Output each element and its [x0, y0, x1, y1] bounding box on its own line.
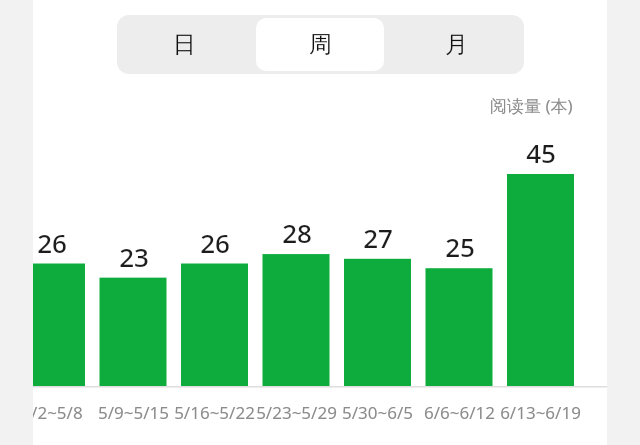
staticText: 阅读量 (本) — [490, 94, 573, 117]
staticText: 25 — [445, 229, 475, 263]
staticText: 26 — [200, 225, 230, 259]
button[interactable]: 月 — [388, 15, 524, 74]
staticText: 周 — [309, 30, 332, 59]
staticText: 6/13~6/19 — [500, 401, 581, 424]
staticText: 45 — [526, 135, 556, 169]
button[interactable]: 周 — [252, 15, 388, 74]
other: Weekly reading chart — [33, 0, 607, 445]
staticText: 28 — [282, 215, 312, 249]
staticText: 日 — [173, 30, 196, 59]
staticText: 月 — [445, 30, 468, 59]
staticText: 27 — [363, 220, 393, 254]
staticText: 5/9~5/15 — [98, 401, 169, 424]
staticText: 5/30~6/5 — [342, 401, 413, 424]
staticText: 6/6~6/12 — [424, 401, 495, 424]
staticText: 5/2~5/8 — [33, 401, 83, 424]
staticText: 26 — [37, 225, 67, 259]
staticText: 23 — [119, 239, 149, 273]
staticText: 5/23~5/29 — [256, 401, 337, 424]
staticText: 5/16~5/22 — [174, 401, 255, 424]
button[interactable]: 日 — [117, 15, 252, 74]
